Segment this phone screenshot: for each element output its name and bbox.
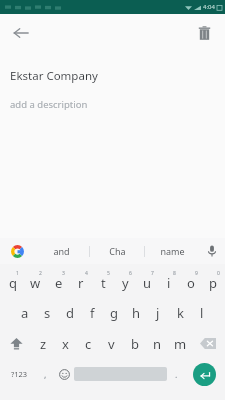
staticText: y: [122, 274, 129, 292]
staticText: j: [156, 304, 160, 322]
staticText: 4:04: [203, 3, 215, 11]
staticText: 3: [62, 270, 65, 277]
button[interactable]: 9: [180, 266, 202, 297]
button[interactable]: Ekstar Company: [10, 68, 225, 84]
staticText: k: [177, 304, 184, 322]
staticText: n: [153, 335, 162, 353]
staticText: m: [174, 335, 187, 353]
button[interactable]: 5: [92, 266, 114, 297]
staticText: 8: [173, 270, 176, 277]
button[interactable]: ,: [36, 359, 54, 389]
staticText: l: [200, 304, 204, 322]
button[interactable]: j: [147, 297, 169, 328]
button[interactable]: Cha: [90, 238, 144, 264]
staticText: v: [108, 335, 115, 353]
button[interactable]: Back: [6, 18, 36, 48]
staticText: 1: [16, 270, 19, 277]
staticText: 4: [85, 270, 88, 277]
button[interactable]: 6: [114, 266, 136, 297]
button[interactable]: Google: [0, 238, 34, 264]
button[interactable]: Delete: [189, 18, 219, 48]
staticText: 5: [107, 270, 110, 277]
button[interactable]: f: [81, 297, 103, 328]
button[interactable]: add a description: [10, 98, 225, 111]
button[interactable]: and: [34, 238, 89, 264]
button[interactable]: 7: [136, 266, 158, 297]
staticText: h: [132, 304, 141, 322]
button[interactable]: a: [13, 297, 36, 328]
button[interactable]: 1: [1, 266, 24, 297]
button[interactable]: c: [77, 328, 100, 359]
staticText: b: [131, 335, 139, 353]
staticText: 9: [195, 270, 198, 277]
button[interactable]: g: [103, 297, 125, 328]
staticText: t: [101, 274, 106, 292]
button[interactable]: k: [169, 297, 191, 328]
button[interactable]: z: [32, 328, 54, 359]
button[interactable]: ?123: [2, 359, 36, 389]
button[interactable]: 3: [47, 266, 70, 297]
button[interactable]: 0: [202, 266, 224, 297]
staticText: q: [9, 274, 17, 292]
staticText: .: [175, 368, 178, 380]
button[interactable]: 2: [24, 266, 47, 297]
staticText: g: [110, 304, 118, 322]
staticText: w: [30, 274, 41, 292]
button[interactable]: n: [146, 328, 169, 359]
button[interactable]: m: [169, 328, 192, 359]
staticText: and: [53, 245, 70, 257]
button[interactable]: Enter: [193, 363, 216, 386]
staticText: 7: [151, 270, 154, 277]
button[interactable]: Shift: [1, 328, 32, 359]
button[interactable]: d: [59, 297, 81, 328]
staticText: 2: [39, 270, 42, 277]
staticText: 0: [217, 270, 220, 277]
staticText: p: [209, 274, 217, 292]
button[interactable]: Backspace: [192, 328, 224, 359]
staticText: f: [90, 304, 95, 322]
staticText: x: [62, 335, 69, 353]
button[interactable]: .: [167, 359, 185, 389]
button[interactable]: 8: [158, 266, 180, 297]
staticText: u: [143, 274, 152, 292]
button[interactable]: s: [36, 297, 59, 328]
staticText: r: [78, 274, 84, 292]
staticText: i: [167, 274, 171, 292]
staticText: e: [55, 274, 63, 292]
staticText: ?123: [11, 369, 28, 379]
staticText: d: [66, 304, 74, 322]
button[interactable]: x: [54, 328, 77, 359]
staticText: add a description: [10, 98, 88, 111]
staticText: ,: [44, 368, 47, 380]
staticText: o: [187, 274, 195, 292]
staticText: name: [160, 245, 185, 257]
button[interactable]: Emoji: [54, 359, 74, 389]
button[interactable]: Voice input: [199, 238, 225, 264]
staticText: a: [21, 304, 29, 322]
staticText: c: [85, 335, 92, 353]
button[interactable]: b: [123, 328, 146, 359]
staticText: s: [44, 304, 51, 322]
staticText: Cha: [109, 245, 126, 257]
button[interactable]: name: [145, 238, 199, 264]
button[interactable]: h: [125, 297, 147, 328]
button[interactable]: v: [100, 328, 123, 359]
staticText: Ekstar Company: [10, 68, 98, 84]
button[interactable]: l: [191, 297, 213, 328]
staticText: 6: [129, 270, 132, 277]
staticText: z: [40, 335, 47, 353]
button[interactable]: 4: [70, 266, 92, 297]
